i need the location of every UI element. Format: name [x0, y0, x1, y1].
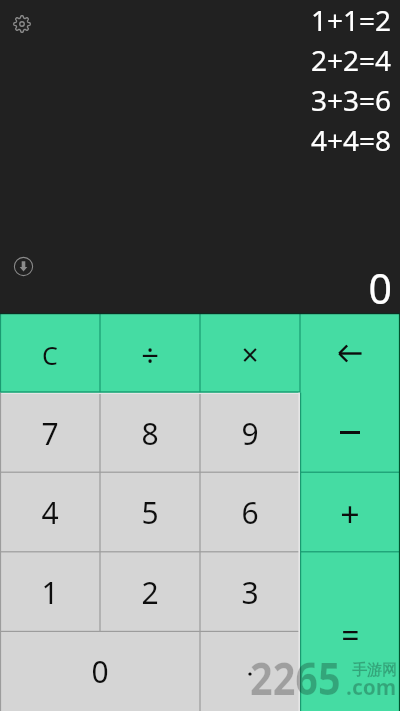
- button[interactable]: 2: [100, 552, 200, 632]
- staticText: ÷: [141, 334, 159, 376]
- button[interactable]: 0: [0, 631, 200, 711]
- button[interactable]: 1: [0, 552, 100, 632]
- button[interactable]: Settings: [13, 15, 31, 33]
- staticText: 0: [368, 260, 392, 316]
- button[interactable]: 6: [200, 472, 300, 552]
- staticText: 4+4=8: [310, 121, 391, 159]
- staticText: 手游网: [352, 661, 397, 680]
- staticText: 7: [41, 413, 59, 454]
- button[interactable]: 5: [100, 472, 200, 552]
- staticText: 2: [141, 572, 159, 613]
- button[interactable]: Backspace: [300, 313, 400, 393]
- staticText: 1+1=2: [310, 1, 391, 39]
- staticText: +: [340, 491, 360, 537]
- staticText: ×: [241, 334, 259, 375]
- staticText: =: [341, 613, 360, 657]
- staticText: 5: [141, 492, 159, 533]
- button[interactable]: 9: [200, 393, 300, 473]
- staticText: 6: [241, 492, 259, 533]
- staticText: 4: [41, 492, 59, 533]
- button[interactable]: ×: [200, 313, 300, 393]
- staticText: 0: [91, 651, 109, 692]
- staticText: 2265: [250, 648, 341, 708]
- staticText: 1: [41, 572, 59, 613]
- staticText: 3: [241, 572, 259, 613]
- button[interactable]: =: [300, 552, 400, 711]
- button[interactable]: 4: [0, 472, 100, 552]
- button[interactable]: ÷: [100, 313, 200, 393]
- button[interactable]: +: [300, 472, 400, 552]
- button[interactable]: Minus: [300, 393, 400, 473]
- staticText: .com: [346, 673, 397, 702]
- button[interactable]: 7: [0, 393, 100, 473]
- staticText: 9: [241, 413, 259, 454]
- staticText: 3+3=6: [310, 81, 391, 119]
- button[interactable]: Decimal point: [200, 631, 300, 711]
- button[interactable]: Show history: [14, 257, 33, 276]
- button[interactable]: 8: [100, 393, 200, 473]
- staticText: 2+2=4: [310, 41, 391, 79]
- button[interactable]: C: [0, 313, 100, 393]
- button[interactable]: 3: [200, 552, 300, 632]
- staticText: C: [42, 338, 58, 372]
- staticText: 8: [141, 413, 159, 454]
